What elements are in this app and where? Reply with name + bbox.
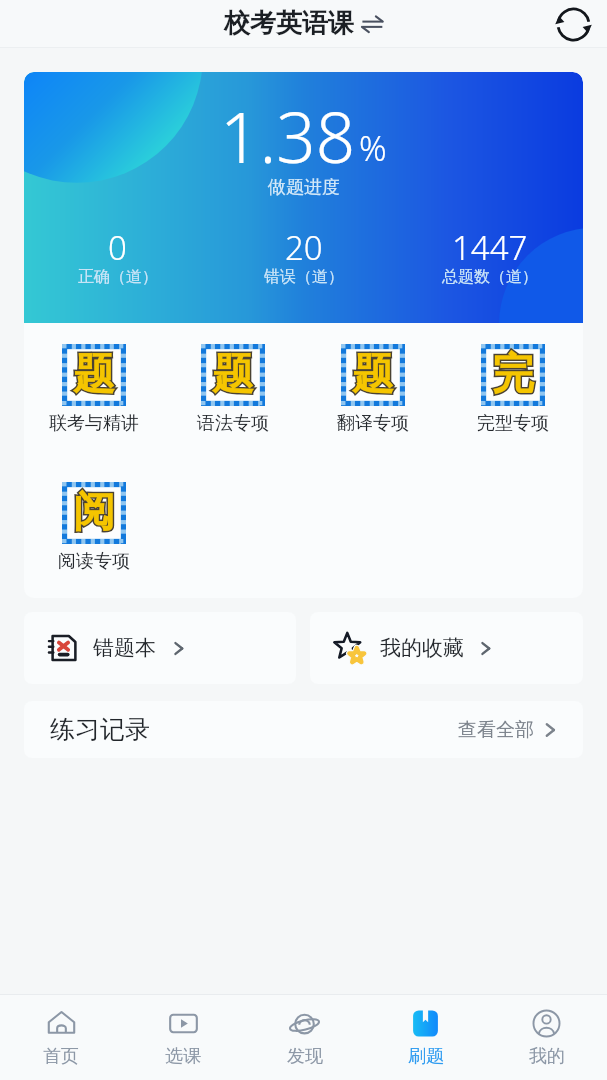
staticText: 我的收藏 bbox=[380, 635, 464, 661]
button[interactable]: 完 bbox=[443, 344, 583, 435]
button[interactable]: Switch course bbox=[360, 12, 384, 36]
staticText: 题 bbox=[212, 348, 254, 401]
staticText: 题 bbox=[73, 348, 115, 401]
button[interactable]: 选课 bbox=[122, 995, 244, 1080]
staticText: % bbox=[359, 125, 387, 171]
staticText: 校考英语课 bbox=[224, 7, 354, 40]
staticText: 联考与精讲 bbox=[49, 412, 139, 435]
staticText: 1.38 bbox=[220, 89, 356, 183]
staticText: 题 bbox=[352, 348, 394, 401]
staticText: 完 bbox=[492, 348, 534, 401]
staticText: 20 bbox=[285, 225, 323, 270]
button[interactable]: 错题本 bbox=[24, 612, 296, 684]
staticText: 选课 bbox=[165, 1045, 201, 1068]
staticText: 阅读专项 bbox=[58, 550, 130, 573]
staticText: 完型专项 bbox=[477, 412, 549, 435]
staticText: 题 bbox=[352, 348, 394, 401]
staticText: 语法专项 bbox=[197, 412, 269, 435]
staticText: 我的 bbox=[529, 1045, 565, 1068]
staticText: 完 bbox=[492, 348, 534, 401]
staticText: 错题本 bbox=[93, 635, 156, 661]
button[interactable]: 题 bbox=[163, 344, 303, 435]
button[interactable]: 题 bbox=[303, 344, 443, 435]
staticText: 总题数（道） bbox=[442, 267, 538, 287]
staticText: 正确（道） bbox=[78, 267, 158, 287]
staticText: 0 bbox=[108, 225, 127, 270]
staticText: 1447 bbox=[452, 225, 528, 270]
staticText: 刷题 bbox=[408, 1045, 444, 1068]
button[interactable]: 我的 bbox=[486, 995, 607, 1080]
staticText: 查看全部 bbox=[458, 718, 534, 742]
button[interactable]: 刷题 bbox=[365, 995, 486, 1080]
staticText: 题 bbox=[73, 348, 115, 401]
staticText: 错误（道） bbox=[264, 267, 344, 287]
staticText: 练习记录 bbox=[50, 714, 150, 745]
staticText: 首页 bbox=[43, 1045, 79, 1068]
staticText: 阅 bbox=[73, 486, 115, 539]
button[interactable]: Refresh bbox=[553, 4, 593, 44]
button[interactable]: 发现 bbox=[244, 995, 365, 1080]
button[interactable]: 练习记录 bbox=[24, 701, 583, 758]
button[interactable]: 我的收藏 bbox=[310, 612, 583, 684]
button[interactable]: 首页 bbox=[0, 995, 122, 1080]
button[interactable]: 阅 bbox=[24, 482, 164, 573]
staticText: 阅 bbox=[73, 486, 115, 539]
staticText: 发现 bbox=[287, 1045, 323, 1068]
staticText: 翻译专项 bbox=[337, 412, 409, 435]
button[interactable]: 题 bbox=[24, 344, 163, 435]
staticText: 题 bbox=[212, 348, 254, 401]
staticText: 做题进度 bbox=[268, 176, 340, 199]
